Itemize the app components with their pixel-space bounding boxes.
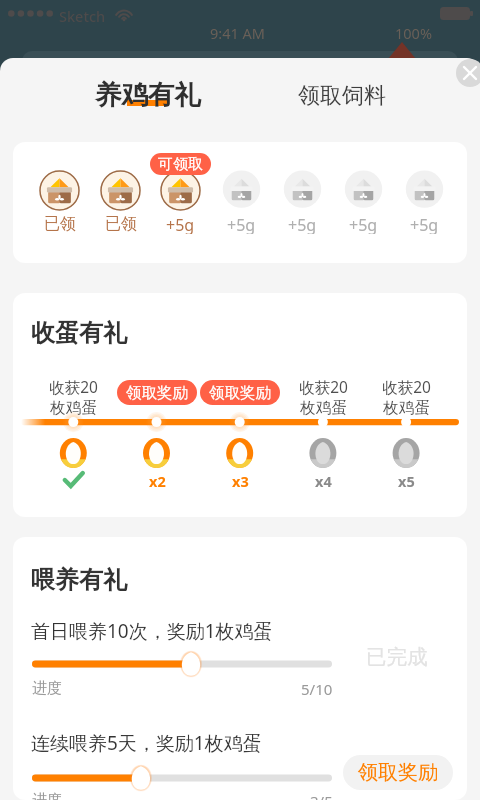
staticText: 喂养有礼 [31,565,127,595]
button[interactable]: +5g [395,170,453,234]
staticText: 已领 [44,214,76,234]
staticText: Sketch [59,6,106,26]
staticText: 养鸡有礼 [95,78,201,111]
staticText: 收获20 枚鸡蛋 [382,376,431,418]
button[interactable]: 已领 [30,170,88,234]
button[interactable]: +5g [151,170,209,234]
staticText: 已完成 [366,644,428,670]
button[interactable]: +5g [273,170,331,234]
button[interactable]: 领取奖励 [117,380,197,405]
staticText: 收蛋有礼 [31,318,127,348]
staticText: x3 [232,471,249,491]
staticText: 3/5 [310,791,333,800]
button[interactable]: 已领 [91,170,149,234]
staticText: 可领取 [158,155,203,174]
staticText: x2 [149,471,166,491]
staticText: +5g [349,214,378,234]
button[interactable]: Close [456,59,480,87]
staticText: +5g [410,214,439,234]
staticText: 领取奖励 [209,383,271,403]
staticText: 首日喂养10次，奖励1枚鸡蛋 [31,618,273,644]
button[interactable]: 可领取 [150,153,211,175]
button[interactable]: +5g [334,170,392,234]
staticText: +5g [166,214,195,234]
button[interactable]: 领取奖励 [200,380,280,405]
staticText: x4 [315,471,332,491]
staticText: 领取奖励 [358,760,438,785]
staticText: 5/10 [301,679,333,699]
staticText: 进度 [32,791,62,800]
button[interactable]: +5g [212,170,270,234]
staticText: 连续喂养5天，奖励1枚鸡蛋 [31,730,262,756]
button[interactable]: 领取奖励 [343,755,453,790]
staticText: 9:41 AM [210,23,265,43]
staticText: 收获20 枚鸡蛋 [299,376,348,418]
staticText: x5 [398,471,415,491]
staticText: 已领 [105,214,137,234]
staticText: 领取奖励 [126,383,188,403]
staticText: 收获20 枚鸡蛋 [49,376,98,418]
staticText: +5g [227,214,256,234]
staticText: 进度 [32,679,62,698]
staticText: +5g [288,214,317,234]
staticText: 100% [395,23,432,43]
staticText: 领取饲料 [298,82,386,110]
